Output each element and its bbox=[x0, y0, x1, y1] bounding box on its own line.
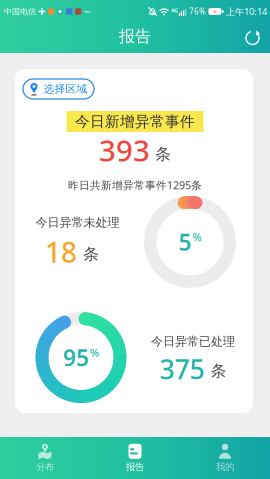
staticText: 报告 bbox=[126, 461, 144, 473]
staticText: 选择区域 bbox=[43, 82, 87, 95]
staticText: 上午10:14 bbox=[226, 5, 267, 18]
staticText: 76% bbox=[189, 6, 206, 17]
button[interactable]: 选择区域 bbox=[23, 79, 94, 99]
staticText: % bbox=[90, 345, 99, 360]
staticText: 中国电信 bbox=[4, 7, 36, 16]
staticText: 5 bbox=[178, 227, 191, 257]
staticText: 375 bbox=[159, 351, 204, 387]
button[interactable]: 报告 bbox=[90, 437, 180, 479]
button[interactable]: 刷新 bbox=[244, 29, 261, 46]
button[interactable]: 分布 bbox=[0, 437, 90, 479]
staticText: 18 bbox=[45, 233, 77, 271]
staticText: 分布 bbox=[36, 461, 54, 473]
staticText: ··· bbox=[84, 6, 90, 17]
staticText: 今日异常已处理 bbox=[151, 334, 235, 349]
staticText: 报告 bbox=[119, 27, 151, 46]
staticText: 我的 bbox=[216, 461, 234, 473]
staticText: 今日新增异常事件 bbox=[75, 112, 195, 130]
staticText: % bbox=[192, 230, 201, 244]
staticText: 95 bbox=[63, 342, 89, 372]
staticText: 今日异常未处理 bbox=[35, 215, 119, 230]
staticText: 393 bbox=[99, 130, 150, 169]
staticText: 条 bbox=[155, 144, 171, 164]
button[interactable]: 我的 bbox=[180, 437, 270, 479]
staticText: 条 bbox=[83, 244, 99, 264]
staticText: 昨日共新增异常事件1295条 bbox=[68, 178, 202, 192]
staticText: 条 bbox=[210, 361, 226, 381]
staticText: 4G bbox=[171, 7, 178, 14]
